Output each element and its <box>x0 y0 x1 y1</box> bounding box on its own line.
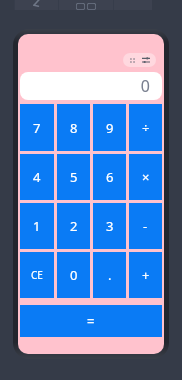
staticText: CE <box>31 268 43 282</box>
staticText: 9 <box>106 119 114 137</box>
staticText: 0 <box>70 266 78 284</box>
staticText: 1 <box>33 217 41 235</box>
staticText: 5 <box>70 168 78 186</box>
button[interactable]: 6 <box>93 154 126 200</box>
staticText: 0 <box>140 75 150 97</box>
button[interactable]: + <box>129 252 162 298</box>
button[interactable]: . <box>93 252 126 298</box>
button[interactable]: - <box>129 203 162 249</box>
staticText: ÷ <box>142 119 150 137</box>
button[interactable]: 1 <box>20 203 54 249</box>
button[interactable]: 8 <box>57 104 90 151</box>
button[interactable]: 5 <box>57 154 90 200</box>
button[interactable]: ÷ <box>129 104 162 151</box>
staticText: - <box>143 217 148 235</box>
button[interactable]: CE <box>20 252 54 298</box>
button[interactable]: 9 <box>93 104 126 151</box>
staticText: 2 <box>70 217 78 235</box>
staticText: 8 <box>70 119 78 137</box>
button[interactable]: Display options <box>123 53 156 67</box>
staticText: . <box>108 266 112 284</box>
button[interactable]: = <box>20 305 162 337</box>
staticText: 6 <box>106 168 114 186</box>
button[interactable]: 3 <box>93 203 126 249</box>
button[interactable]: 7 <box>20 104 54 151</box>
staticText: 3 <box>106 217 114 235</box>
button[interactable]: 0 <box>20 72 162 100</box>
button[interactable]: 2 <box>57 203 90 249</box>
staticText: 7 <box>33 119 41 137</box>
button[interactable]: 4 <box>20 154 54 200</box>
staticText: × <box>142 168 150 186</box>
staticText: + <box>142 266 150 284</box>
staticText: 4 <box>33 168 41 186</box>
button[interactable]: 0 <box>57 252 90 298</box>
button[interactable]: × <box>129 154 162 200</box>
staticText: = <box>87 312 95 330</box>
